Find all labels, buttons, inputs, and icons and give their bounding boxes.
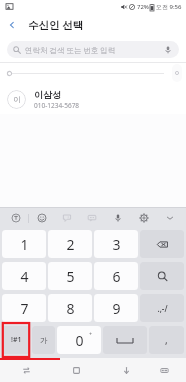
button[interactable]: Hide keyboard	[116, 360, 136, 380]
button[interactable]: BACKSPACE	[140, 230, 184, 258]
button[interactable]: 6	[94, 262, 138, 290]
button[interactable]: 5	[48, 262, 92, 290]
staticText: 오전 9:56	[156, 3, 182, 11]
button[interactable]: Collapse	[157, 208, 183, 228]
button[interactable]: Settings	[131, 208, 157, 228]
staticText: !#1	[11, 335, 22, 345]
staticText: 72%	[137, 3, 149, 11]
button[interactable]: Home	[66, 360, 86, 380]
button[interactable]: Text mode	[3, 208, 28, 228]
staticText: 5	[66, 267, 75, 286]
staticText: 4	[20, 267, 29, 286]
button[interactable]: 0	[57, 326, 101, 354]
staticText: 가	[40, 336, 48, 345]
button[interactable]: .,-/	[140, 294, 184, 322]
button[interactable]: Recents	[16, 360, 36, 380]
button[interactable]: 연락처 검색 또는 번호 입력	[7, 41, 179, 58]
staticText: 7	[20, 299, 29, 318]
staticText: 이삼성	[34, 89, 61, 100]
button[interactable]: 9	[94, 294, 138, 322]
button[interactable]	[172, 64, 182, 82]
button[interactable]: Emoji	[29, 208, 54, 228]
button[interactable]: Voice search	[162, 44, 173, 55]
button[interactable]: 3	[94, 230, 138, 258]
staticText: 연락처 검색 또는 번호 입력	[25, 45, 116, 55]
button[interactable]: Switch keyboard	[154, 360, 174, 380]
staticText: 010-1234-5678	[34, 101, 80, 110]
button[interactable]: 7	[2, 294, 46, 322]
button[interactable]: 2	[48, 230, 92, 258]
staticText: 3	[112, 235, 121, 254]
button[interactable]: Back	[0, 13, 24, 36]
button[interactable]: GIF	[79, 208, 105, 228]
button[interactable]: !#1	[2, 326, 30, 354]
button[interactable]: ,	[149, 326, 184, 354]
button[interactable]: 가	[32, 326, 55, 354]
staticText: 9	[112, 299, 121, 318]
staticText: .,-/	[157, 303, 168, 314]
staticText: 이	[13, 95, 21, 104]
button[interactable]: Stickers	[54, 208, 79, 228]
button[interactable]: Space	[103, 326, 147, 354]
staticText: 8	[66, 299, 75, 318]
staticText: 2	[66, 235, 75, 254]
staticText: 0	[75, 331, 84, 350]
staticText: 6	[112, 267, 121, 286]
button[interactable]: 1	[2, 230, 46, 258]
button[interactable]: 8	[48, 294, 92, 322]
button[interactable]: 4	[2, 262, 46, 290]
staticText: ,	[165, 333, 168, 347]
button[interactable]: Voice input	[105, 208, 131, 228]
button[interactable]: 이	[0, 84, 186, 114]
staticText: 수신인 선택	[28, 18, 84, 32]
staticText: 1	[20, 235, 29, 254]
button[interactable]: SEARCH	[140, 262, 184, 290]
staticText: +	[89, 330, 93, 337]
